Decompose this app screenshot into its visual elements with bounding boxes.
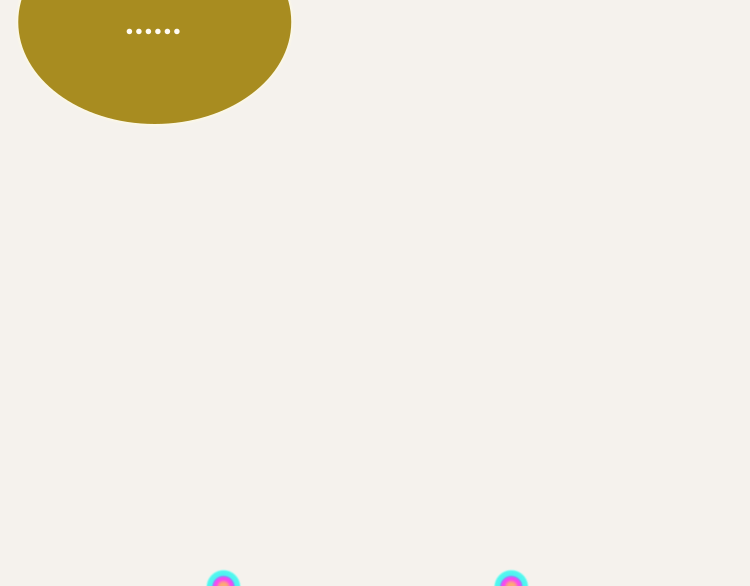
button[interactable]: Passcode (18, 0, 291, 158)
button[interactable]: Story (492, 568, 530, 586)
button[interactable]: Story (205, 568, 242, 586)
